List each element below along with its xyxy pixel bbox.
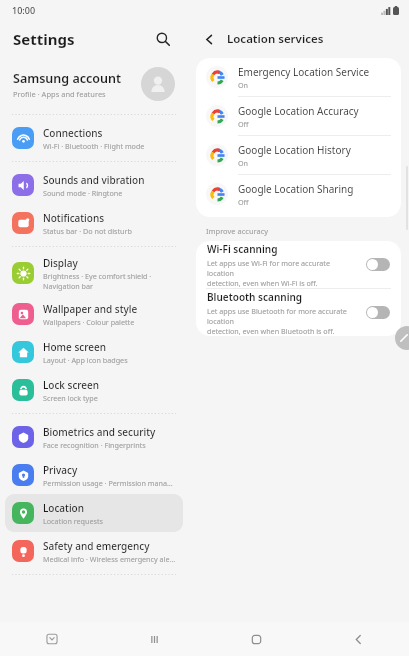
button[interactable]: Sounds and vibration (5, 166, 183, 204)
staticText: On (238, 80, 249, 90)
staticText: Biometrics and security (43, 425, 156, 439)
button[interactable]: Samsung account (0, 58, 188, 110)
staticText: Settings (13, 29, 75, 49)
button[interactable]: Bluetooth scanning (196, 289, 401, 336)
button[interactable]: Back (345, 626, 371, 652)
staticText: Improve accuracy (206, 226, 269, 236)
staticText: Layout · App icon badges (43, 355, 128, 365)
staticText: 10:00 (12, 4, 36, 16)
staticText: Let apps use Wi-Fi for more accurate loc… (207, 258, 358, 278)
button[interactable]: Home screen (5, 333, 183, 371)
staticText: Display (43, 256, 78, 270)
staticText: Wallpaper and style (43, 302, 138, 316)
button[interactable]: Edit (395, 326, 409, 350)
button[interactable]: Google Location History (196, 136, 401, 174)
button[interactable]: Google Location Sharing (196, 175, 401, 213)
button[interactable]: Location (5, 494, 183, 532)
button[interactable]: Wallpaper and style (5, 295, 183, 333)
button[interactable]: Safety and emergency (5, 532, 183, 570)
button[interactable]: Search (150, 26, 176, 52)
staticText: Wi-Fi scanning (207, 242, 278, 256)
staticText: Face recognition · Fingerprints (43, 440, 146, 450)
staticText: Off (238, 197, 249, 207)
button[interactable]: Hide keyboard (39, 626, 65, 652)
staticText: Google Location Accuracy (238, 104, 359, 118)
button[interactable]: Google Location Accuracy (196, 97, 401, 135)
staticText: Google Location History (238, 143, 351, 157)
button[interactable]: Wi-Fi scanning (196, 241, 401, 288)
staticText: Lock screen (43, 378, 100, 392)
staticText: Brightness · Eye comfort shield · (43, 271, 152, 281)
staticText: Location services (227, 31, 324, 47)
staticText: Connections (43, 126, 103, 140)
staticText: Sounds and vibration (43, 173, 145, 187)
staticText: Sound mode · Ringtone (43, 188, 123, 198)
staticText: Status bar · Do not disturb (43, 226, 132, 236)
button[interactable]: Privacy (5, 456, 183, 494)
button[interactable]: Wi-Fi scanning toggle (366, 258, 390, 271)
staticText: On (238, 158, 249, 168)
button[interactable]: Notifications (5, 204, 183, 242)
staticText: Let apps use Bluetooth for more accurate… (207, 306, 358, 326)
button[interactable]: Back (198, 28, 220, 50)
button[interactable]: Biometrics and security (5, 418, 183, 456)
staticText: Profile · Apps and features (13, 89, 106, 99)
staticText: Navigation bar (43, 281, 93, 291)
staticText: Location requests (43, 516, 103, 526)
staticText: Google Location Sharing (238, 182, 354, 196)
staticText: Location (43, 501, 84, 515)
staticText: Wallpapers · Colour palette (43, 317, 135, 327)
staticText: Notifications (43, 211, 105, 225)
staticText: Samsung account (13, 70, 121, 87)
button[interactable]: Display (5, 251, 183, 295)
button[interactable]: Emergency Location Service (196, 58, 401, 96)
staticText: Wi-Fi · Bluetooth · Flight mode (43, 141, 145, 151)
staticText: detection, even when Wi-Fi is off. (207, 278, 318, 288)
staticText: Emergency Location Service (238, 65, 370, 79)
staticText: Off (238, 119, 249, 129)
staticText: Home screen (43, 340, 106, 354)
staticText: Screen lock type (43, 393, 98, 403)
staticText: Safety and emergency (43, 539, 150, 553)
staticText: Permission usage · Permission manager (43, 478, 176, 488)
staticText: Privacy (43, 463, 78, 477)
button[interactable]: Recents (141, 626, 167, 652)
staticText: Medical info · Wireless emergency alerts (43, 554, 176, 564)
button[interactable]: Lock screen (5, 371, 183, 409)
button[interactable]: Home (243, 626, 269, 652)
button[interactable]: Bluetooth scanning toggle (366, 306, 390, 319)
staticText: detection, even when Bluetooth is off. (207, 326, 335, 336)
button[interactable]: Connections (5, 119, 183, 157)
staticText: Bluetooth scanning (207, 290, 303, 304)
